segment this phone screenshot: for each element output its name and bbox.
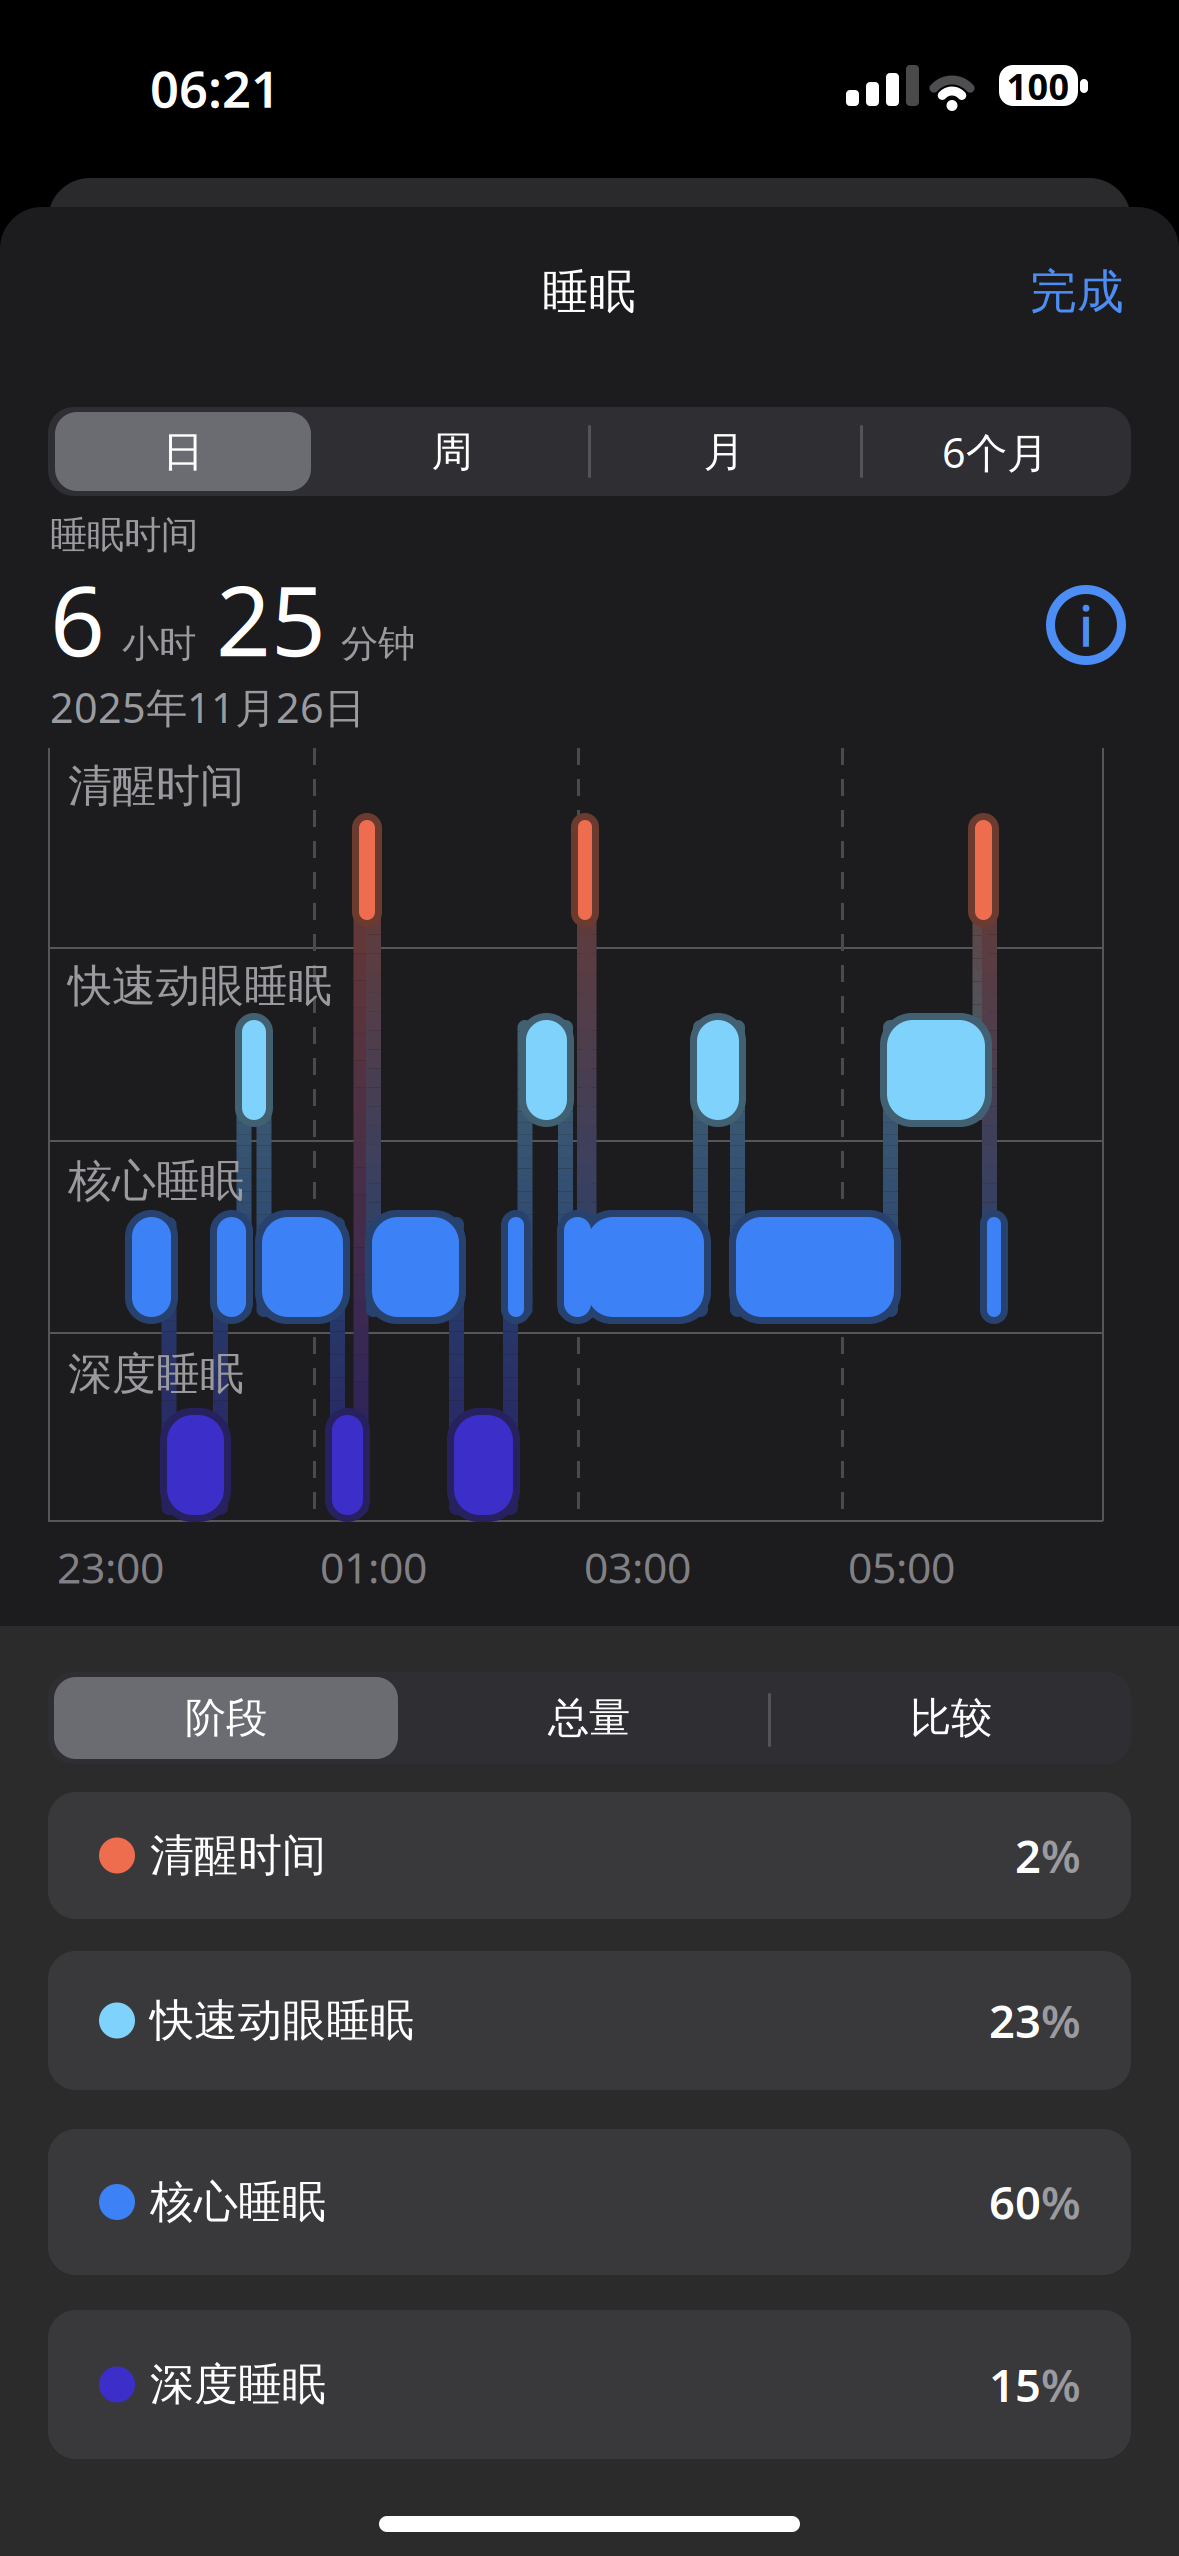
staticText: 100 [1006, 62, 1069, 110]
button[interactable]: 信息 [1031, 570, 1141, 680]
button[interactable]: 快速动眼睡眠 [48, 1951, 1131, 2090]
staticText: 分钟 [341, 621, 415, 667]
staticText: % [1041, 1990, 1081, 2051]
staticText: 06:21 [150, 54, 280, 122]
button[interactable]: 完成 [992, 244, 1162, 340]
staticText: 6个月 [942, 425, 1048, 479]
staticText: 总量 [548, 1693, 630, 1743]
staticText: 23 [989, 1990, 1041, 2051]
staticText: 深度睡眠 [68, 1347, 244, 1401]
staticText: 日 [162, 427, 203, 477]
staticText: 清醒时间 [150, 1828, 326, 1882]
button[interactable]: 月 [590, 408, 858, 496]
staticText: 2 [1015, 1825, 1041, 1886]
staticText: 周 [431, 427, 472, 477]
staticText: 完成 [1030, 263, 1124, 321]
staticText: 6 [50, 555, 105, 683]
staticText: 快速动眼睡眠 [68, 959, 332, 1013]
staticText: 03:00 [584, 1539, 691, 1595]
staticText: 核心睡眠 [150, 2175, 326, 2229]
button[interactable]: 核心睡眠 [48, 2129, 1131, 2275]
button[interactable]: 清醒时间 [48, 1792, 1131, 1919]
button[interactable]: 周 [318, 408, 586, 496]
staticText: 睡眠 [542, 263, 636, 321]
staticText: 睡眠时间 [50, 512, 198, 558]
staticText: 深度睡眠 [150, 2357, 326, 2411]
button[interactable]: 日 [49, 408, 317, 496]
staticText: 25 [216, 555, 326, 683]
staticText: % [1041, 2354, 1081, 2415]
button[interactable]: 深度睡眠 [48, 2310, 1131, 2459]
staticText: 05:00 [848, 1539, 955, 1595]
staticText: 23:00 [57, 1539, 164, 1595]
button[interactable]: 6个月 [861, 408, 1129, 496]
staticText: 月 [703, 427, 744, 477]
staticText: 核心睡眠 [68, 1154, 244, 1208]
staticText: 60 [989, 2172, 1041, 2232]
staticText: 01:00 [320, 1539, 427, 1595]
staticText: 小时 [122, 621, 196, 667]
staticText: % [1041, 1825, 1081, 1886]
staticText: i [1078, 588, 1093, 662]
staticText: 15 [989, 2354, 1041, 2415]
staticText: 快速动眼睡眠 [150, 1993, 414, 2047]
staticText: 比较 [910, 1693, 992, 1743]
staticText: 2025年11月26日 [50, 680, 365, 734]
button[interactable]: 比较 [781, 1673, 1121, 1763]
button[interactable]: 阶段 [56, 1673, 396, 1763]
button[interactable]: 总量 [419, 1673, 759, 1763]
staticText: 清醒时间 [68, 759, 244, 813]
staticText: 阶段 [185, 1693, 267, 1743]
staticText: % [1041, 2172, 1081, 2232]
